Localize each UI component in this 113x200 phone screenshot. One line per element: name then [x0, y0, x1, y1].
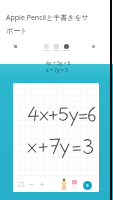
staticText: 4x + 5y = 6 [46, 60, 71, 67]
staticText: Apple Pencilと手書きをサポート [6, 13, 91, 35]
button[interactable]: Graph [54, 44, 59, 49]
button[interactable]: Formula [44, 44, 49, 49]
button[interactable]: More options [92, 45, 95, 48]
button[interactable]: Handwriting [64, 44, 69, 49]
button[interactable]: Play [83, 181, 92, 190]
staticText: x + 7y = 3 [46, 67, 68, 74]
